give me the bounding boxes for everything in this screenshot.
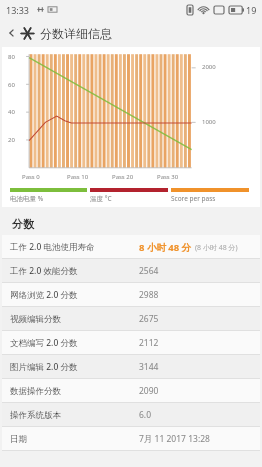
staticText: 分数详细信息 xyxy=(40,26,112,41)
staticText: Pass 30 xyxy=(157,173,179,181)
staticText: 6.0 xyxy=(139,409,152,421)
staticText: Pass 0 xyxy=(22,173,40,181)
staticText: Pass 10 xyxy=(67,173,89,181)
staticText: (8 小时 48 分) xyxy=(195,243,238,253)
other: Back xyxy=(6,27,18,39)
staticText: 温度 °C xyxy=(90,194,112,203)
staticText: 分数 xyxy=(12,217,34,231)
staticText: 2564 xyxy=(139,265,159,277)
staticText: 40 xyxy=(8,108,15,116)
staticText: 2988 xyxy=(139,289,159,301)
staticText: 2112 xyxy=(139,337,159,349)
staticText: 1000 xyxy=(202,118,216,126)
staticText: 2675 xyxy=(139,313,159,325)
staticText: 工作 2.0 电池使用寿命 xyxy=(10,241,95,253)
button[interactable]: 工作 2.0 电池使用寿命 xyxy=(2,235,260,259)
staticText: 13:33 xyxy=(6,4,30,16)
staticText: 3144 xyxy=(139,361,159,373)
staticText: 日期 xyxy=(10,434,27,445)
staticText: 2000 xyxy=(202,63,216,71)
staticText: 2090 xyxy=(139,385,159,397)
staticText: 7月 11 2017 13:28 xyxy=(139,433,210,445)
staticText: 19 xyxy=(246,4,257,16)
button[interactable]: 数据操作分数 xyxy=(2,379,260,403)
button[interactable]: Back xyxy=(0,19,262,47)
staticText: 80 xyxy=(8,53,15,61)
staticText: 文档编写 2.0 分数 xyxy=(10,337,78,349)
button[interactable]: 工作 2.0 效能分数 xyxy=(2,259,260,283)
staticText: 图片编辑 2.0 分数 xyxy=(10,361,78,373)
staticText: 视频编辑分数 xyxy=(10,314,61,325)
staticText: 数据操作分数 xyxy=(10,386,61,397)
button[interactable]: 日期 xyxy=(2,427,260,451)
staticText: 工作 2.0 效能分数 xyxy=(10,265,78,277)
staticText: 网络浏览 2.0 分数 xyxy=(10,289,78,301)
button[interactable]: 图片编辑 2.0 分数 xyxy=(2,355,260,379)
staticText: 20 xyxy=(8,136,15,144)
staticText: Pass 20 xyxy=(112,173,134,181)
staticText: 8 小时 48 分 xyxy=(139,241,192,254)
button[interactable]: 网络浏览 2.0 分数 xyxy=(2,283,260,307)
button[interactable]: 视频编辑分数 xyxy=(2,307,260,331)
staticText: 电池电量 % xyxy=(10,194,44,203)
staticText: Score per pass xyxy=(171,194,216,203)
button[interactable]: 文档编写 2.0 分数 xyxy=(2,331,260,355)
staticText: 操作系统版本 xyxy=(10,410,61,421)
staticText: 60 xyxy=(8,81,15,89)
button[interactable]: 操作系统版本 xyxy=(2,403,260,427)
